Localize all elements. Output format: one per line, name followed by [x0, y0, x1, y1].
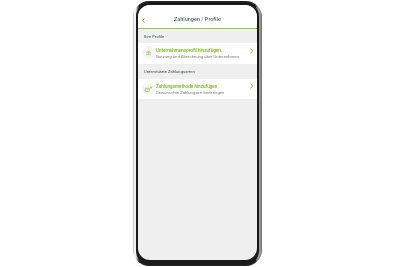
- staticText: Unterstützte Zahlungsarten: [144, 69, 195, 74]
- button[interactable]: Unternehmensprofil hinzufügen.: [138, 43, 257, 64]
- button[interactable]: Zurück: [138, 14, 149, 26]
- staticText: Ihre Profile: [144, 34, 165, 39]
- staticText: Gewünschte Zahlungsart hinterlegen: [156, 90, 225, 95]
- button[interactable]: Zahlungsmethode hinzufügen: [138, 79, 257, 99]
- staticText: Unternehmensprofil hinzufügen.: [156, 48, 223, 53]
- staticText: Zahlungen / Profile: [174, 16, 221, 22]
- staticText: Nutzung und Abrechnung über Unternehmen: [156, 54, 239, 59]
- staticText: Zahlungsmethode hinzufügen: [156, 84, 218, 89]
